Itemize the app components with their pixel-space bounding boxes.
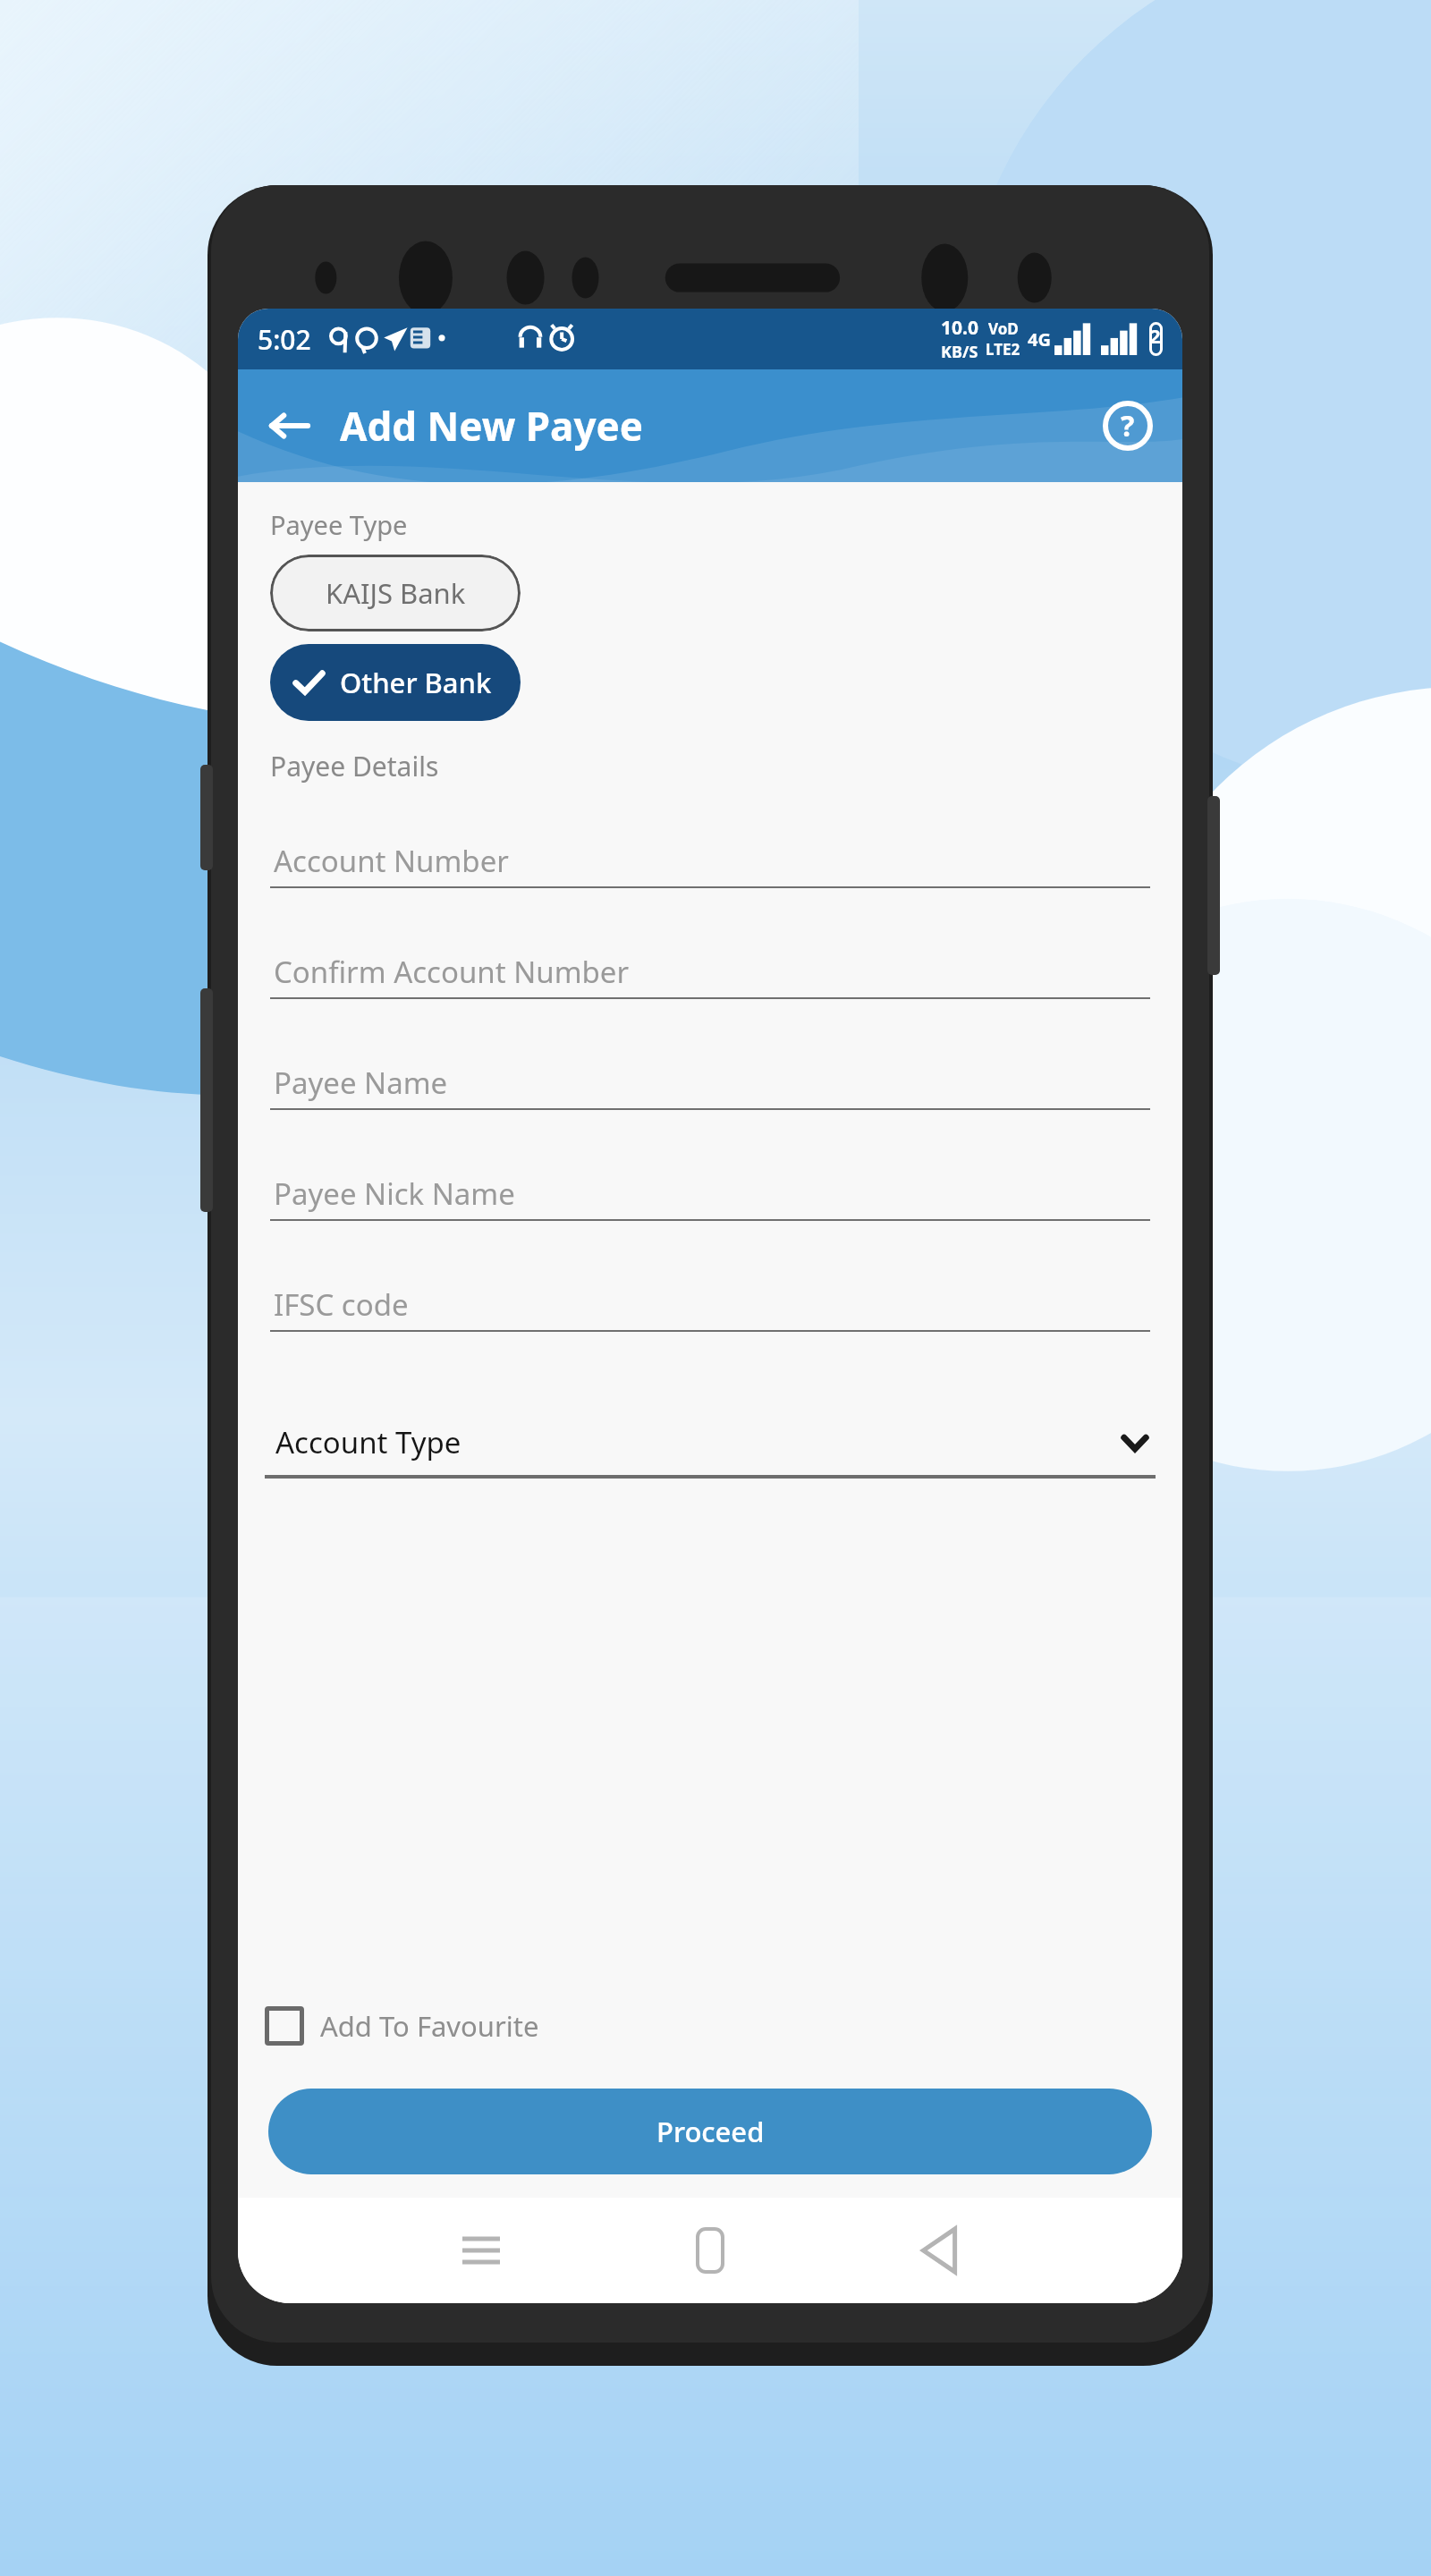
button[interactable]: Recents (443, 2212, 520, 2289)
staticText: VoD (988, 318, 1019, 339)
staticText: Confirm Account Number (274, 952, 630, 992)
staticText: Add To Favourite (320, 2007, 539, 2045)
staticText: Payee Nick Name (274, 1174, 515, 1214)
staticText: 4G (1028, 327, 1051, 352)
staticText: Account Number (274, 841, 509, 881)
staticText: ? (1121, 406, 1135, 445)
staticText: 5:02 (258, 321, 311, 358)
staticText: LTE2 (986, 339, 1020, 360)
button[interactable]: Home (672, 2212, 749, 2289)
staticText: Other Bank (340, 664, 492, 701)
button[interactable]: Proceed (268, 2089, 1152, 2174)
button[interactable]: Other Bank (270, 644, 521, 721)
staticText: 10.0 (941, 315, 978, 341)
staticText: 27 (1149, 322, 1163, 356)
staticText: Account Type (275, 1422, 461, 1462)
button[interactable]: Help (1097, 394, 1159, 457)
button[interactable]: Back (261, 397, 318, 454)
staticText: Payee Name (274, 1063, 448, 1103)
button[interactable]: KAIJS Bank (270, 555, 521, 631)
staticText: Payee Details (270, 748, 439, 784)
staticText: Payee Type (270, 507, 408, 542)
button[interactable]: Back (901, 2212, 978, 2289)
staticText: IFSC code (274, 1284, 409, 1325)
button[interactable]: Account Type (265, 1409, 1156, 1479)
staticText: Add New Payee (340, 399, 644, 453)
staticText: KB/S (941, 341, 978, 363)
button[interactable]: Add To Favourite (265, 2006, 539, 2046)
staticText: Proceed (656, 2113, 765, 2150)
staticText: KAIJS Bank (326, 574, 466, 612)
